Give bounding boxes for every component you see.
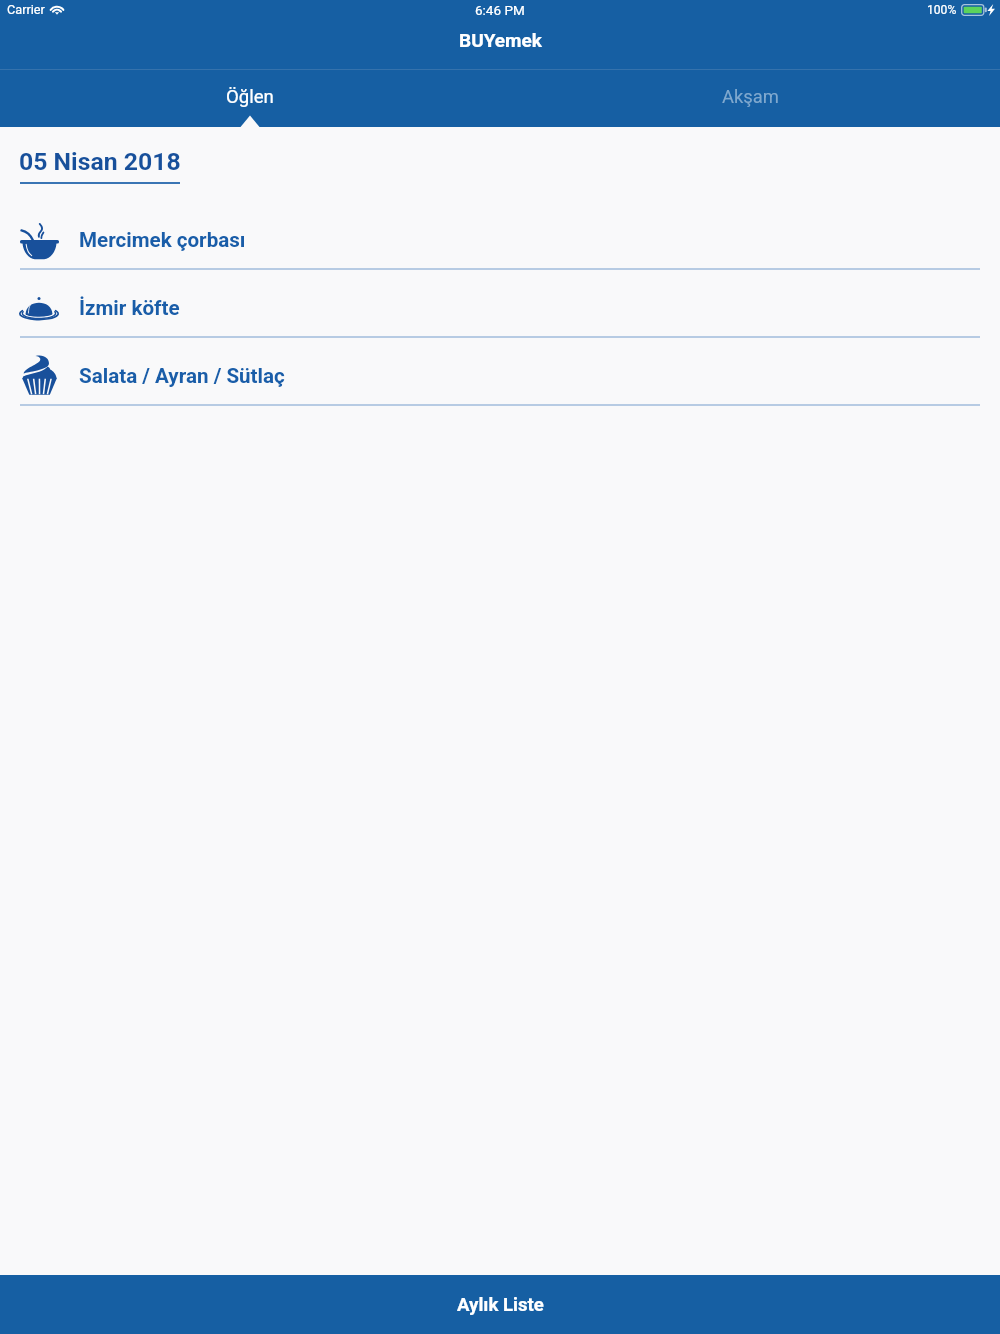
staticText: Akşam [722,86,779,108]
staticText: Aylık Liste [457,1294,544,1316]
button[interactable]: Salata / Ayran / Sütlaç [0,338,1000,406]
staticText: Öğlen [226,86,274,108]
staticText: 100% [927,3,957,17]
button[interactable]: İzmir köfte [0,270,1000,338]
staticText: Mercimek çorbası [79,228,246,252]
button[interactable]: Öğlen [0,70,500,127]
staticText: Carrier [7,2,45,17]
button[interactable]: Mercimek çorbası [0,202,1000,270]
staticText: 6:46 PM [475,2,525,18]
button[interactable]: Akşam [500,70,1000,127]
staticText: Salata / Ayran / Sütlaç [79,364,285,388]
button[interactable]: Aylık Liste [0,1275,1000,1334]
staticText: BUYemek [459,29,542,51]
staticText: İzmir köfte [79,296,180,320]
staticText: 05 Nisan 2018 [19,147,181,176]
